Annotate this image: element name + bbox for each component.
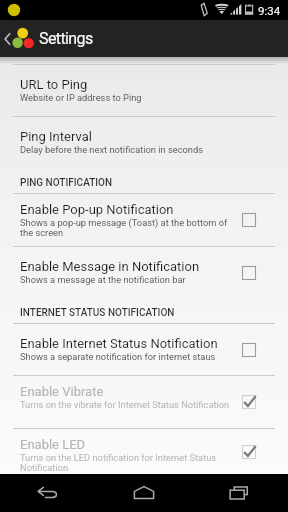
staticText: Enable Pop-up Notification xyxy=(20,202,174,217)
button[interactable]: Enable LED xyxy=(0,429,288,474)
button[interactable]: Enable Pop-up Notification xyxy=(0,194,288,246)
staticText: Shows a message at the notification bar xyxy=(20,274,186,285)
staticText: Enable Message in Notification xyxy=(20,259,200,274)
staticText: Delay before the next notification in se… xyxy=(20,144,204,155)
staticText: Settings xyxy=(39,29,93,48)
staticText: Turns on the LED notification for Intern… xyxy=(20,452,236,473)
staticText: Shows a pop-up message (Toast) at the bo… xyxy=(20,217,236,238)
button[interactable]: Ping Interval xyxy=(0,117,288,168)
staticText: Website or IP address to Ping xyxy=(20,92,142,103)
staticText: Ping Interval xyxy=(20,129,92,144)
staticText: PING NOTIFICATION xyxy=(20,177,113,189)
staticText: Enable Vibrate xyxy=(20,384,104,399)
staticText: Enable Internet Status Notification xyxy=(20,336,218,351)
button[interactable]: URL to Ping xyxy=(0,65,288,116)
staticText: Turns on the vibrate for Internet Status… xyxy=(20,399,230,410)
staticText: 9:34 xyxy=(258,4,281,17)
staticText: URL to Ping xyxy=(20,77,88,92)
staticText: Enable LED xyxy=(20,437,86,452)
staticText: Shows a separate notification for intern… xyxy=(20,351,216,362)
button[interactable]: Home xyxy=(96,474,192,512)
button[interactable]: Navigate up xyxy=(0,20,36,57)
staticText: INTERNET STATUS NOTIFICATION xyxy=(20,307,175,319)
button[interactable]: Recent apps xyxy=(192,474,288,512)
button[interactable]: Enable Internet Status Notification xyxy=(0,324,288,375)
button[interactable]: Enable Message in Notification xyxy=(0,247,288,298)
button[interactable]: Enable Vibrate xyxy=(0,376,288,428)
button[interactable]: Back xyxy=(0,474,96,512)
